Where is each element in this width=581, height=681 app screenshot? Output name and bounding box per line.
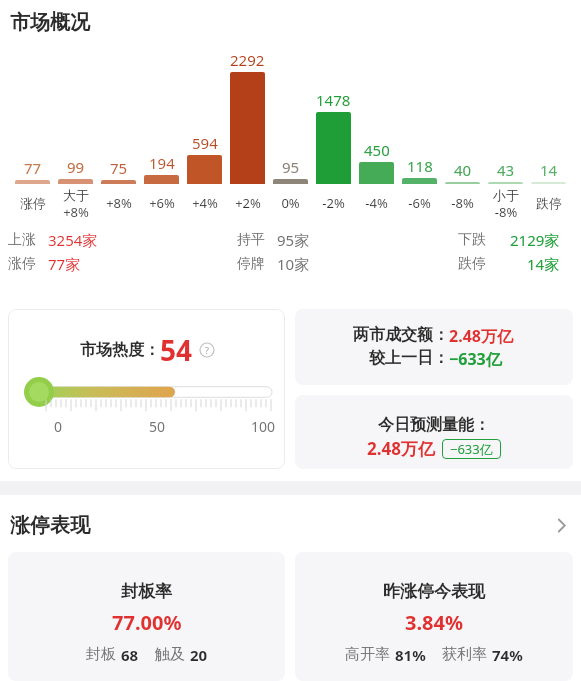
button[interactable]: 封板率 (8, 552, 285, 681)
staticText: 100 (251, 417, 276, 436)
staticText: 市场热度： (80, 340, 160, 360)
staticText: +4% (192, 194, 218, 212)
staticText: 99 (67, 157, 85, 177)
staticText: 0% (281, 194, 300, 212)
staticText: 450 (364, 140, 390, 160)
button[interactable]: 两市成交额： (295, 309, 573, 385)
staticText: 2129家 (510, 230, 560, 250)
staticText: 81% (395, 645, 426, 665)
button[interactable]: 昨涨停今表现 (295, 552, 573, 681)
staticText: 跌停 (458, 255, 486, 273)
staticText: 封板率 (121, 581, 172, 602)
staticText: −633亿 (449, 348, 502, 370)
staticText: 43 (497, 160, 515, 180)
staticText: 获利率 (442, 645, 487, 664)
staticText: 上涨 (8, 231, 36, 249)
staticText: 77家 (48, 254, 81, 274)
staticText: 下跌 (458, 231, 486, 249)
staticText: 涨停表现 (10, 513, 90, 538)
staticText: +6% (149, 194, 175, 212)
staticText: 2292 (230, 50, 265, 70)
staticText: 194 (149, 153, 175, 173)
staticText: 40 (454, 160, 472, 180)
staticText: 持平 (237, 231, 265, 249)
staticText: 市场概况 (10, 10, 90, 35)
staticText: -6% (408, 194, 431, 212)
staticText: 小于 -8% (493, 187, 519, 220)
staticText: +2% (235, 194, 261, 212)
staticText: 2.48万亿 (367, 437, 435, 460)
staticText: 118 (407, 156, 433, 176)
button[interactable]: 涨停表现 (10, 513, 569, 538)
staticText: 74% (492, 645, 523, 665)
staticText: ? (205, 344, 209, 356)
staticText: 两市成交额： (353, 325, 449, 345)
staticText: 50 (149, 417, 166, 436)
staticText: 昨涨停今表现 (383, 581, 485, 602)
staticText: -4% (365, 194, 388, 212)
staticText: -2% (322, 194, 345, 212)
staticText: 54 (160, 331, 193, 369)
staticText: 涨停 (8, 255, 36, 273)
staticText: 95 (282, 157, 300, 177)
staticText: 14家 (527, 254, 560, 274)
staticText: −633亿 (450, 440, 493, 458)
staticText: 77 (24, 158, 42, 178)
staticText: 68 (121, 645, 139, 665)
staticText: 涨停 (20, 195, 46, 211)
staticText: 1478 (316, 90, 351, 110)
staticText: 触及 (155, 645, 185, 664)
staticText: +8% (106, 194, 132, 212)
staticText: 3254家 (48, 230, 98, 250)
staticText: 今日预测量能： (378, 415, 490, 435)
staticText: 高开率 (345, 645, 390, 664)
staticText: 大于 +8% (63, 187, 89, 220)
staticText: 跌停 (536, 195, 562, 211)
staticText: 3.84% (405, 609, 463, 636)
staticText: 594 (192, 133, 218, 153)
staticText: 2.48万亿 (449, 325, 513, 347)
staticText: 0 (54, 417, 63, 436)
staticText: 75 (110, 158, 128, 178)
staticText: -8% (451, 194, 474, 212)
staticText: 较上一日： (369, 348, 449, 368)
staticText: 停牌 (237, 255, 265, 273)
staticText: 77.00% (112, 609, 182, 636)
staticText: 20 (190, 645, 208, 665)
staticText: 10家 (277, 254, 310, 274)
staticText: 封板 (86, 645, 116, 664)
staticText: 95家 (277, 230, 310, 250)
staticText: 14 (540, 160, 558, 180)
button[interactable]: 市场热度： (8, 309, 285, 469)
button[interactable]: 今日预测量能： (295, 395, 573, 469)
